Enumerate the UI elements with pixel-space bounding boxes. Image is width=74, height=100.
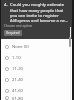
staticText: 11-20 bbox=[12, 66, 23, 72]
other: Select option bbox=[5, 45, 9, 49]
button[interactable]: Select option bbox=[1, 52, 72, 63]
button[interactable]: Select option bbox=[1, 85, 72, 96]
button[interactable]: Select option bbox=[1, 96, 72, 100]
button[interactable]: Select option bbox=[1, 41, 72, 52]
staticText: Could you roughly estimate that how many… bbox=[10, 2, 69, 23]
staticText: None (0) bbox=[12, 44, 29, 50]
button[interactable]: Required bbox=[4, 30, 22, 36]
staticText: Choose one option bbox=[4, 24, 33, 28]
staticText: 1-10 bbox=[12, 55, 21, 61]
other: Select option bbox=[5, 78, 9, 82]
button[interactable]: Select option bbox=[1, 63, 72, 74]
staticText: 4. bbox=[4, 2, 8, 8]
staticText: Required bbox=[6, 31, 20, 35]
other: Select option bbox=[5, 56, 9, 60]
button[interactable]: Select option bbox=[1, 74, 72, 85]
other: Select option bbox=[5, 67, 9, 71]
staticText: 41-60 bbox=[12, 88, 23, 94]
other: Select option bbox=[5, 96, 9, 100]
staticText: 21-40 bbox=[12, 77, 23, 83]
staticText: 61-80 bbox=[12, 96, 23, 100]
other: Select option bbox=[5, 89, 9, 93]
